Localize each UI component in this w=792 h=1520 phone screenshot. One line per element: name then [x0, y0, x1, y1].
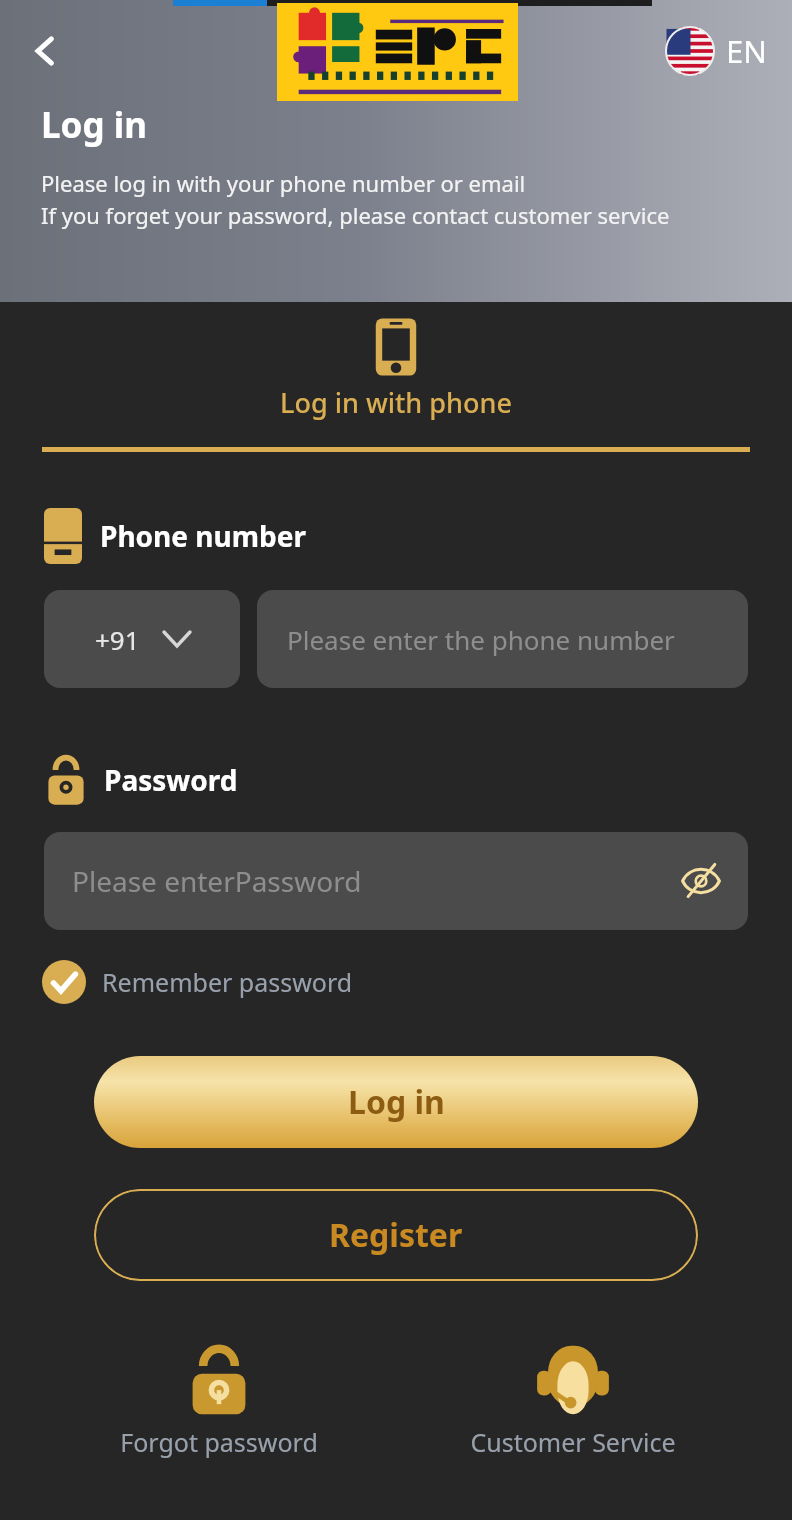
staticText: Register [329, 1213, 463, 1257]
button[interactable]: Remember password [42, 956, 367, 1008]
staticText: Log in with phone [280, 384, 512, 421]
button[interactable]: Log in with phone [0, 316, 792, 421]
button[interactable]: Language English [658, 18, 775, 84]
staticText: Phone number [100, 517, 306, 555]
staticText: Customer Service [470, 1425, 676, 1459]
button[interactable]: Log in [94, 1056, 698, 1148]
button[interactable]: Please enter the phone number [257, 590, 748, 688]
button[interactable]: Back [14, 20, 76, 82]
staticText: EN [726, 30, 767, 72]
staticText: Password [104, 761, 238, 799]
staticText: Please log in with your phone number or … [41, 168, 526, 198]
staticText: Forgot password [120, 1425, 318, 1459]
staticText: Remember password [102, 965, 353, 999]
staticText: +91 [95, 622, 140, 657]
button[interactable]: Customer Service [396, 1341, 750, 1459]
staticText: Please enter the phone number [287, 622, 675, 657]
staticText: If you forget your password, please cont… [41, 200, 670, 230]
button[interactable]: Register [94, 1189, 698, 1281]
staticText: Log in [348, 1080, 445, 1124]
staticText: Please enterPassword [72, 862, 362, 900]
other: Show password [678, 858, 724, 904]
button[interactable]: +91 [44, 590, 240, 688]
button[interactable]: Please enterPassword [44, 832, 748, 930]
button[interactable]: Forgot password [42, 1341, 396, 1459]
staticText: Log in [41, 101, 147, 149]
